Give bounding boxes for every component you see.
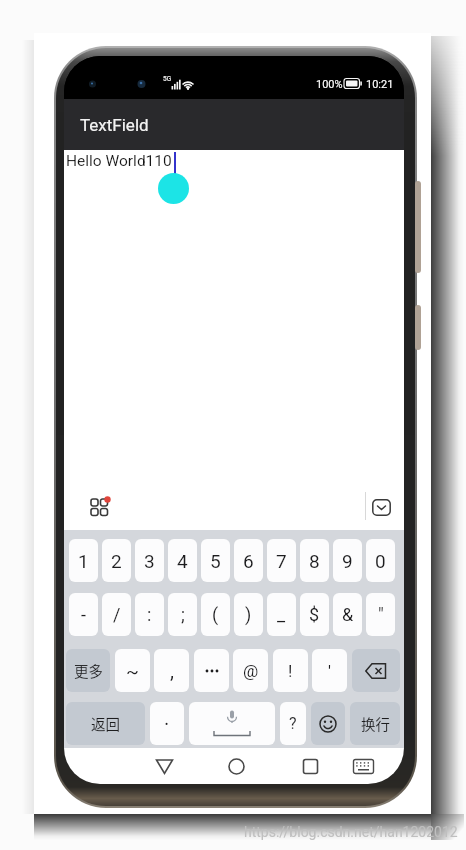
button[interactable]: " (366, 593, 395, 636)
staticText: : (147, 604, 152, 625)
button[interactable] (152, 756, 177, 778)
staticText: 8 (309, 550, 320, 572)
button[interactable] (224, 754, 249, 779)
button[interactable]: 6 (234, 539, 263, 582)
staticText: Hello World110 (66, 152, 172, 170)
button[interactable]: 更多 (66, 649, 110, 692)
staticText: 9 (342, 550, 353, 572)
staticText: ! (288, 661, 293, 681)
staticText: ~ (126, 660, 139, 682)
staticText: ' (328, 661, 331, 681)
staticText: 3 (144, 550, 155, 572)
staticText: ( (212, 604, 219, 625)
staticText: & (342, 604, 354, 625)
staticText: TextField (80, 115, 149, 135)
button[interactable]: ' (312, 649, 347, 692)
button[interactable]: 换行 (350, 702, 400, 745)
staticText: ? (289, 714, 297, 733)
button[interactable]: 7 (267, 539, 296, 582)
button[interactable]: $ (300, 593, 329, 636)
staticText: , (170, 659, 174, 682)
staticText: ) (245, 604, 252, 625)
button[interactable]: 9 (333, 539, 362, 582)
button[interactable]: , (154, 649, 189, 692)
staticText: ; (181, 604, 185, 625)
button[interactable] (311, 702, 345, 745)
button[interactable]: 返回 (66, 702, 145, 745)
staticText: " (378, 604, 384, 625)
button[interactable]: ( (201, 593, 230, 636)
staticText: 7 (276, 550, 287, 572)
button[interactable]: 1 (69, 539, 98, 582)
button[interactable]: ! (273, 649, 308, 692)
staticText: @ (243, 661, 259, 681)
button[interactable]: ) (234, 593, 263, 636)
staticText: 更多 (74, 660, 103, 681)
button[interactable] (372, 499, 391, 516)
button[interactable]: / (102, 593, 131, 636)
button[interactable]: ~ (115, 649, 150, 692)
button[interactable]: 3 (135, 539, 164, 582)
button[interactable]: & (333, 593, 362, 636)
staticText: 6 (243, 550, 254, 572)
staticText: 2 (111, 550, 122, 572)
button[interactable] (194, 649, 229, 692)
staticText: - (81, 604, 86, 625)
button[interactable]: @ (233, 649, 268, 692)
staticText: https://blog.csdn.net/han1202012 (244, 824, 458, 840)
staticText: 5G (163, 75, 172, 83)
button[interactable]: ; (168, 593, 197, 636)
button[interactable]: 4 (168, 539, 197, 582)
staticText: 100% (316, 78, 343, 91)
staticText: 1 (78, 550, 89, 572)
button[interactable]: 2 (102, 539, 131, 582)
button[interactable] (189, 702, 275, 745)
staticText: 换行 (361, 713, 390, 734)
staticText: $ (309, 604, 320, 625)
button[interactable] (300, 756, 321, 777)
staticText: 0 (375, 550, 386, 572)
staticText: _ (277, 604, 286, 625)
button[interactable]: 0 (366, 539, 395, 582)
button[interactable]: 5 (201, 539, 230, 582)
staticText: 返回 (91, 713, 120, 734)
button[interactable]: _ (267, 593, 296, 636)
button[interactable]: - (69, 593, 98, 636)
button[interactable]: ? (280, 702, 306, 745)
button[interactable]: Hello World110 (64, 150, 404, 530)
staticText: 5 (210, 550, 221, 572)
button[interactable] (351, 756, 376, 777)
button[interactable]: · (150, 702, 184, 745)
staticText: · (164, 712, 170, 735)
button[interactable]: : (135, 593, 164, 636)
button[interactable] (352, 649, 400, 692)
staticText: / (113, 604, 121, 625)
staticText: 4 (177, 550, 188, 572)
button[interactable]: 8 (300, 539, 329, 582)
button[interactable] (90, 497, 112, 519)
staticText: 10:21 (366, 78, 394, 91)
